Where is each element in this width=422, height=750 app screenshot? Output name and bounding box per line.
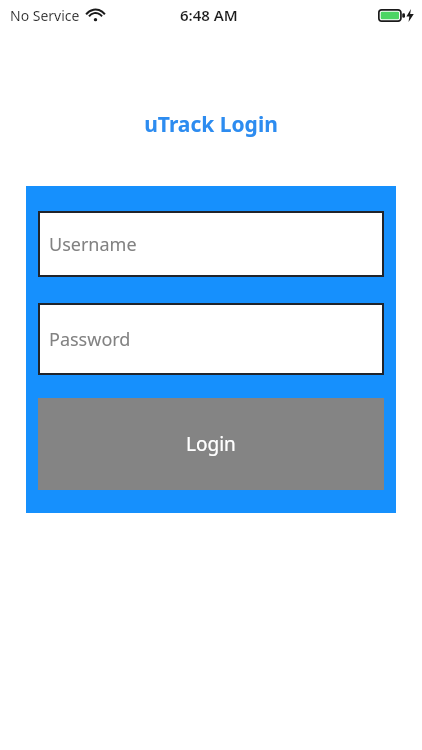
staticText: Username (49, 232, 137, 257)
staticText: Password (49, 327, 131, 352)
staticText: Login (186, 431, 236, 457)
button[interactable]: Password (38, 303, 384, 375)
button[interactable]: Username (38, 211, 384, 277)
staticText: 6:48 AM (180, 5, 238, 25)
button[interactable]: Login (38, 398, 384, 490)
staticText: uTrack Login (0, 110, 422, 139)
staticText: No Service (10, 6, 80, 25)
